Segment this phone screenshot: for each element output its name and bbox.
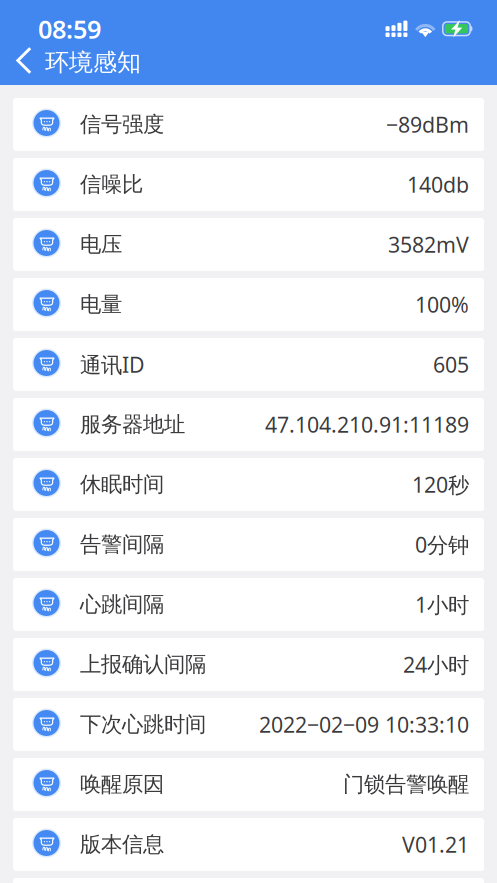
staticText: 电量 (80, 291, 122, 318)
button[interactable]: 休眠时间 (13, 458, 484, 511)
staticText: 告警间隔 (80, 531, 164, 558)
staticText: 环境感知 (45, 48, 141, 77)
staticText: 24小时 (403, 650, 469, 679)
staticText: 100% (415, 290, 469, 319)
button[interactable]: 心跳间隔 (13, 578, 484, 631)
staticText: 下次心跳时间 (80, 711, 206, 738)
staticText: 47.104.210.91:11189 (265, 410, 469, 439)
staticText: 140db (407, 170, 469, 199)
staticText: 2022−02−09 10:33:10 (259, 710, 469, 739)
button[interactable]: 信号强度 (13, 98, 484, 151)
staticText: V01.21 (402, 830, 469, 859)
staticText: 上报确认间隔 (80, 651, 206, 678)
staticText: 1小时 (415, 590, 469, 619)
button[interactable]: 上报确认间隔 (13, 638, 484, 691)
staticText: 08:59 (38, 12, 101, 46)
staticText: 信号强度 (80, 111, 164, 138)
staticText: 版本信息 (80, 831, 164, 858)
button[interactable]: 服务器地址 (13, 398, 484, 451)
staticText: 605 (433, 350, 469, 379)
staticText: 休眠时间 (80, 471, 164, 498)
button[interactable]: 信噪比 (13, 158, 484, 211)
staticText: 门锁告警唤醒 (343, 771, 469, 798)
button[interactable]: 下次心跳时间 (13, 698, 484, 751)
staticText: 通讯ID (80, 350, 145, 379)
staticText: 3582mV (388, 230, 469, 259)
staticText: 120秒 (412, 470, 469, 499)
staticText: 唤醒原因 (80, 771, 164, 798)
button[interactable]: 版本信息 (13, 818, 484, 871)
button[interactable]: 电量 (13, 278, 484, 331)
staticText: 电压 (80, 231, 122, 258)
button[interactable]: 唤醒原因 (13, 758, 484, 811)
button[interactable]: 通讯ID (13, 338, 484, 391)
staticText: 服务器地址 (80, 411, 185, 438)
staticText: 信噪比 (80, 171, 143, 198)
staticText: 心跳间隔 (80, 591, 164, 618)
staticText: −89dBm (386, 110, 469, 139)
button[interactable]: Back (8, 45, 40, 84)
button[interactable]: 告警间隔 (13, 518, 484, 571)
staticText: 0分钟 (415, 530, 469, 559)
button[interactable]: 电压 (13, 218, 484, 271)
